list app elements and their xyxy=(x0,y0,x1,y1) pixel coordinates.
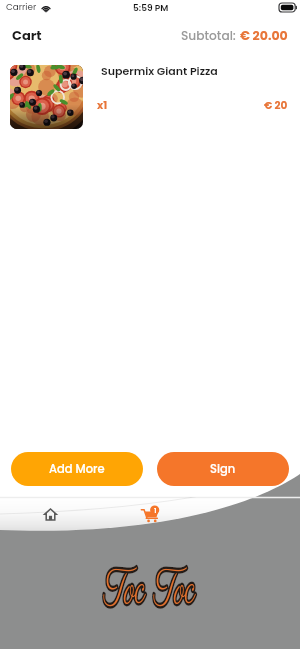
button[interactable]: Cart, 1 item xyxy=(100,504,200,525)
button[interactable]: Supermix Giant Pizza xyxy=(0,52,300,128)
button[interactable]: Home xyxy=(0,504,100,525)
staticText: Toc Toc xyxy=(104,556,196,625)
staticText: 1 xyxy=(154,506,157,515)
staticText: Subtotal: xyxy=(181,27,240,44)
staticText: Add More xyxy=(49,461,105,477)
staticText: Supermix Giant Pizza xyxy=(101,63,218,78)
staticText: Toc Toc xyxy=(104,556,196,625)
staticText: Sign xyxy=(210,461,236,477)
staticText: Carrier xyxy=(6,1,37,13)
staticText: € 20 xyxy=(264,98,288,113)
staticText: € 20.00 xyxy=(240,27,288,44)
button[interactable]: Add More xyxy=(11,452,143,486)
staticText: x1 xyxy=(97,98,108,113)
staticText: 5:59 PM xyxy=(133,2,169,15)
button[interactable]: Sign xyxy=(157,452,289,486)
staticText: Cart xyxy=(12,26,42,44)
